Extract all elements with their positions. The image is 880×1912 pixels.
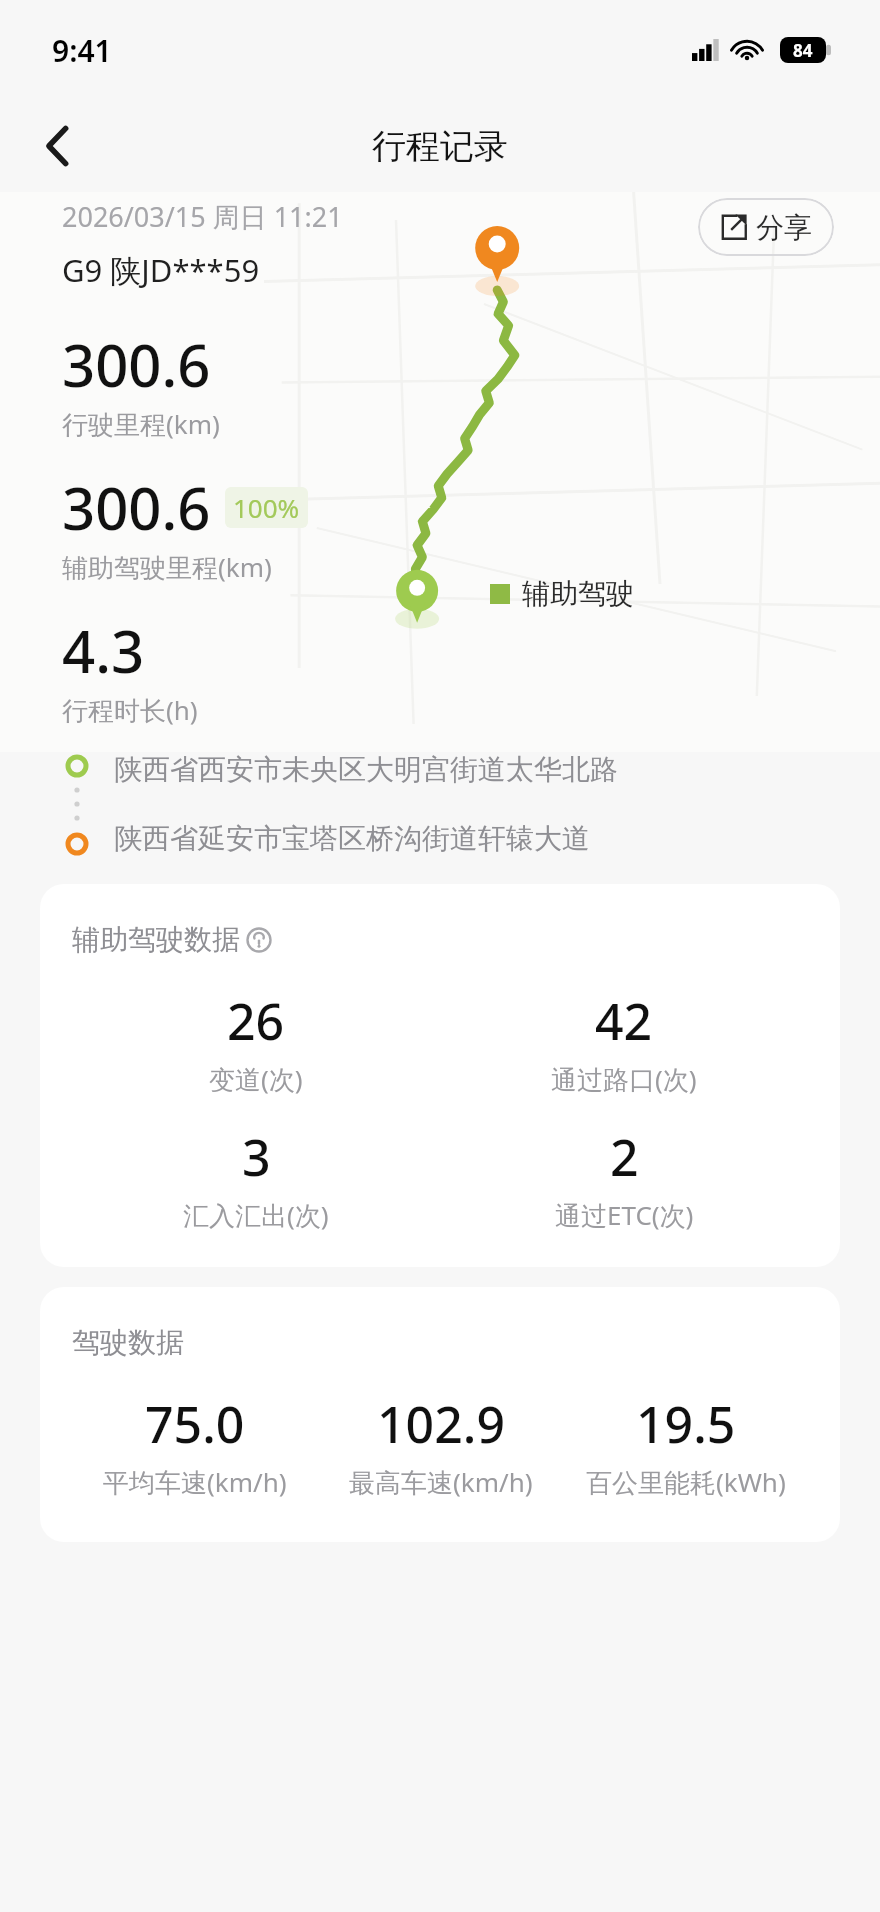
staticText: 陕西省延安市宝塔区桥沟街道轩辕大道 [114, 821, 590, 856]
staticText: 300.6 [62, 325, 211, 404]
staticText: 辅助驾驶 [522, 576, 634, 611]
staticText: 百公里能耗(kWh) [586, 1464, 786, 1500]
other: Info [246, 927, 272, 953]
staticText: 变道(次) [209, 1061, 303, 1097]
staticText: 75.0 [145, 1390, 245, 1458]
staticText: 平均车速(km/h) [103, 1464, 287, 1500]
staticText: 19.5 [636, 1390, 736, 1458]
staticText: 分享 [756, 210, 812, 245]
staticText: G9 陕JD***59 [62, 249, 260, 291]
staticText: 行驶里程(km) [62, 406, 220, 442]
staticText: 陕西省西安市未央区大明宫街道太华北路 [114, 752, 618, 787]
staticText: 102.9 [377, 1390, 505, 1458]
staticText: 3 [242, 1123, 271, 1191]
staticText: 42 [595, 987, 653, 1055]
staticText: 辅助驾驶数据 [72, 922, 240, 957]
staticText: 通过路口(次) [551, 1061, 697, 1097]
button[interactable]: Back [26, 114, 90, 178]
staticText: 最高车速(km/h) [349, 1464, 533, 1500]
staticText: 9:41 [52, 30, 112, 71]
staticText: 2 [610, 1123, 639, 1191]
button[interactable]: 辅助驾驶数据 [40, 884, 840, 1267]
button[interactable]: 分享 [698, 198, 834, 256]
staticText: 84 [793, 39, 813, 62]
staticText: 4.3 [62, 611, 145, 690]
staticText: 26 [227, 987, 285, 1055]
staticText: 通过ETC(次) [555, 1197, 694, 1233]
staticText: 汇入汇出(次) [183, 1197, 329, 1233]
staticText: 行程记录 [372, 125, 508, 168]
staticText: 100% [233, 490, 300, 525]
staticText: 2026/03/15 周日 11:21 [62, 198, 343, 235]
staticText: 行程时长(h) [62, 692, 198, 728]
staticText: 辅助驾驶里程(km) [62, 549, 272, 585]
staticText: 300.6 [62, 468, 211, 547]
staticText: 驾驶数据 [72, 1325, 184, 1360]
button[interactable]: 驾驶数据 [40, 1287, 840, 1542]
